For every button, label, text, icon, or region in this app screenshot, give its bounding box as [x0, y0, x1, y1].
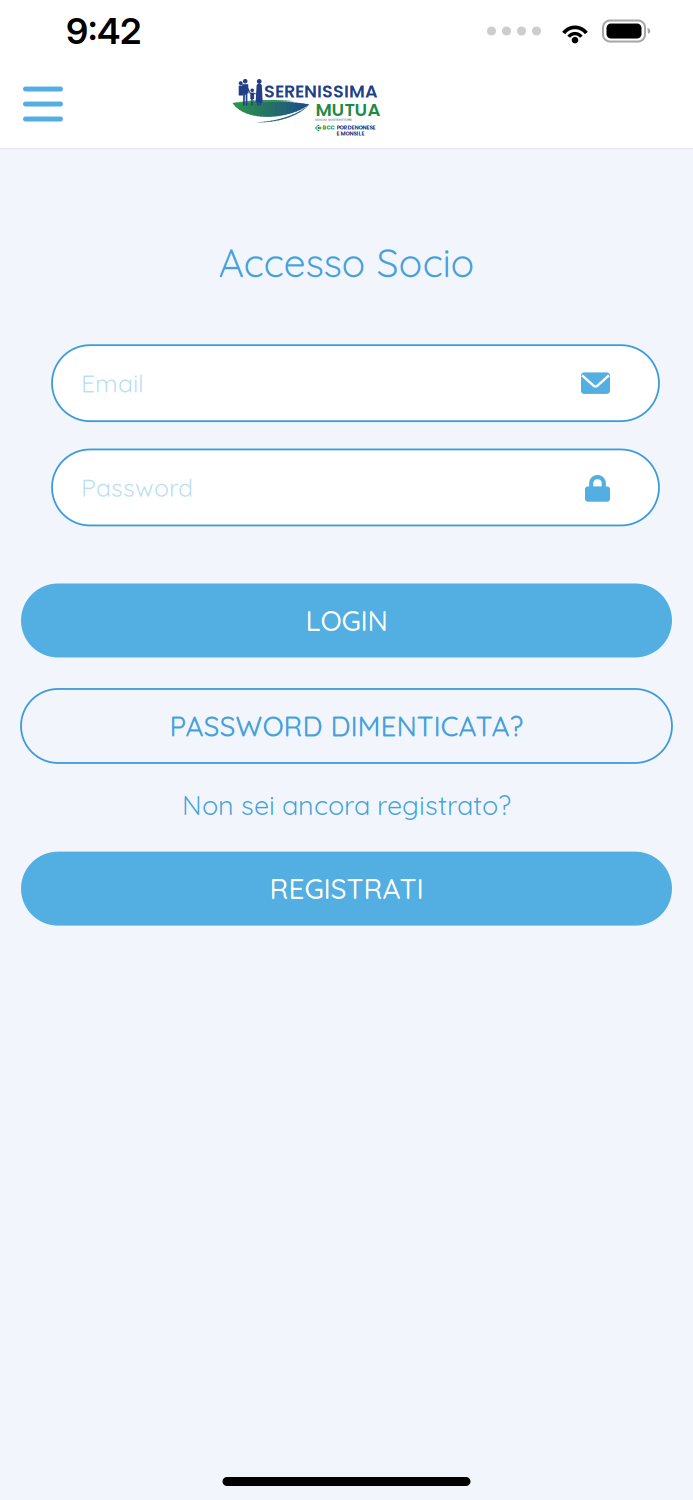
- staticText: BCC: [322, 123, 334, 131]
- button[interactable]: Password: [52, 449, 659, 525]
- staticText: Email: [81, 368, 144, 399]
- button[interactable]: REGISTRATI: [21, 852, 672, 926]
- button[interactable]: Menu: [6, 73, 80, 135]
- button[interactable]: PASSWORD DIMENTICATA?: [21, 689, 672, 763]
- staticText: Non sei ancora registrato?: [182, 788, 511, 822]
- staticText: MUTUA: [315, 97, 380, 122]
- staticText: E MONSILE: [336, 129, 364, 137]
- staticText: REGISTRATI: [269, 871, 423, 906]
- staticText: Password: [81, 472, 193, 503]
- staticText: PORDENONESE: [336, 123, 375, 131]
- button[interactable]: LOGIN: [21, 583, 672, 657]
- button[interactable]: Email: [52, 345, 659, 421]
- staticText: 9:42: [66, 9, 141, 53]
- staticText: SOCIO SOSTENITORE: [315, 117, 352, 122]
- staticText: LOGIN: [305, 603, 387, 638]
- staticText: C: [316, 124, 320, 132]
- staticText: Accesso Socio: [218, 238, 474, 287]
- staticText: SERENISSIMA: [264, 79, 378, 104]
- staticText: PASSWORD DIMENTICATA?: [169, 708, 523, 743]
